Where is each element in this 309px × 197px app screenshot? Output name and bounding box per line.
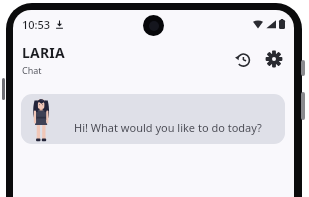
button[interactable]: Settings xyxy=(261,46,287,72)
staticText: Hi! What would you like to do today? xyxy=(74,120,262,135)
button[interactable]: History xyxy=(229,46,255,72)
staticText: LARIA xyxy=(22,43,65,62)
button[interactable]: Hi! What would you like to do today? xyxy=(21,94,285,144)
staticText: 10:53 xyxy=(22,17,51,32)
staticText: Chat xyxy=(22,64,42,76)
